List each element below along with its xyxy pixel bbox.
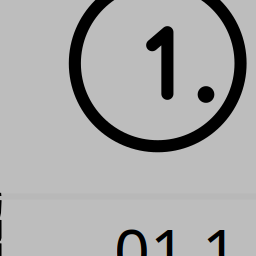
button[interactable]: Step 1 [0,0,256,186]
staticText: 01 1 [114,208,238,256]
